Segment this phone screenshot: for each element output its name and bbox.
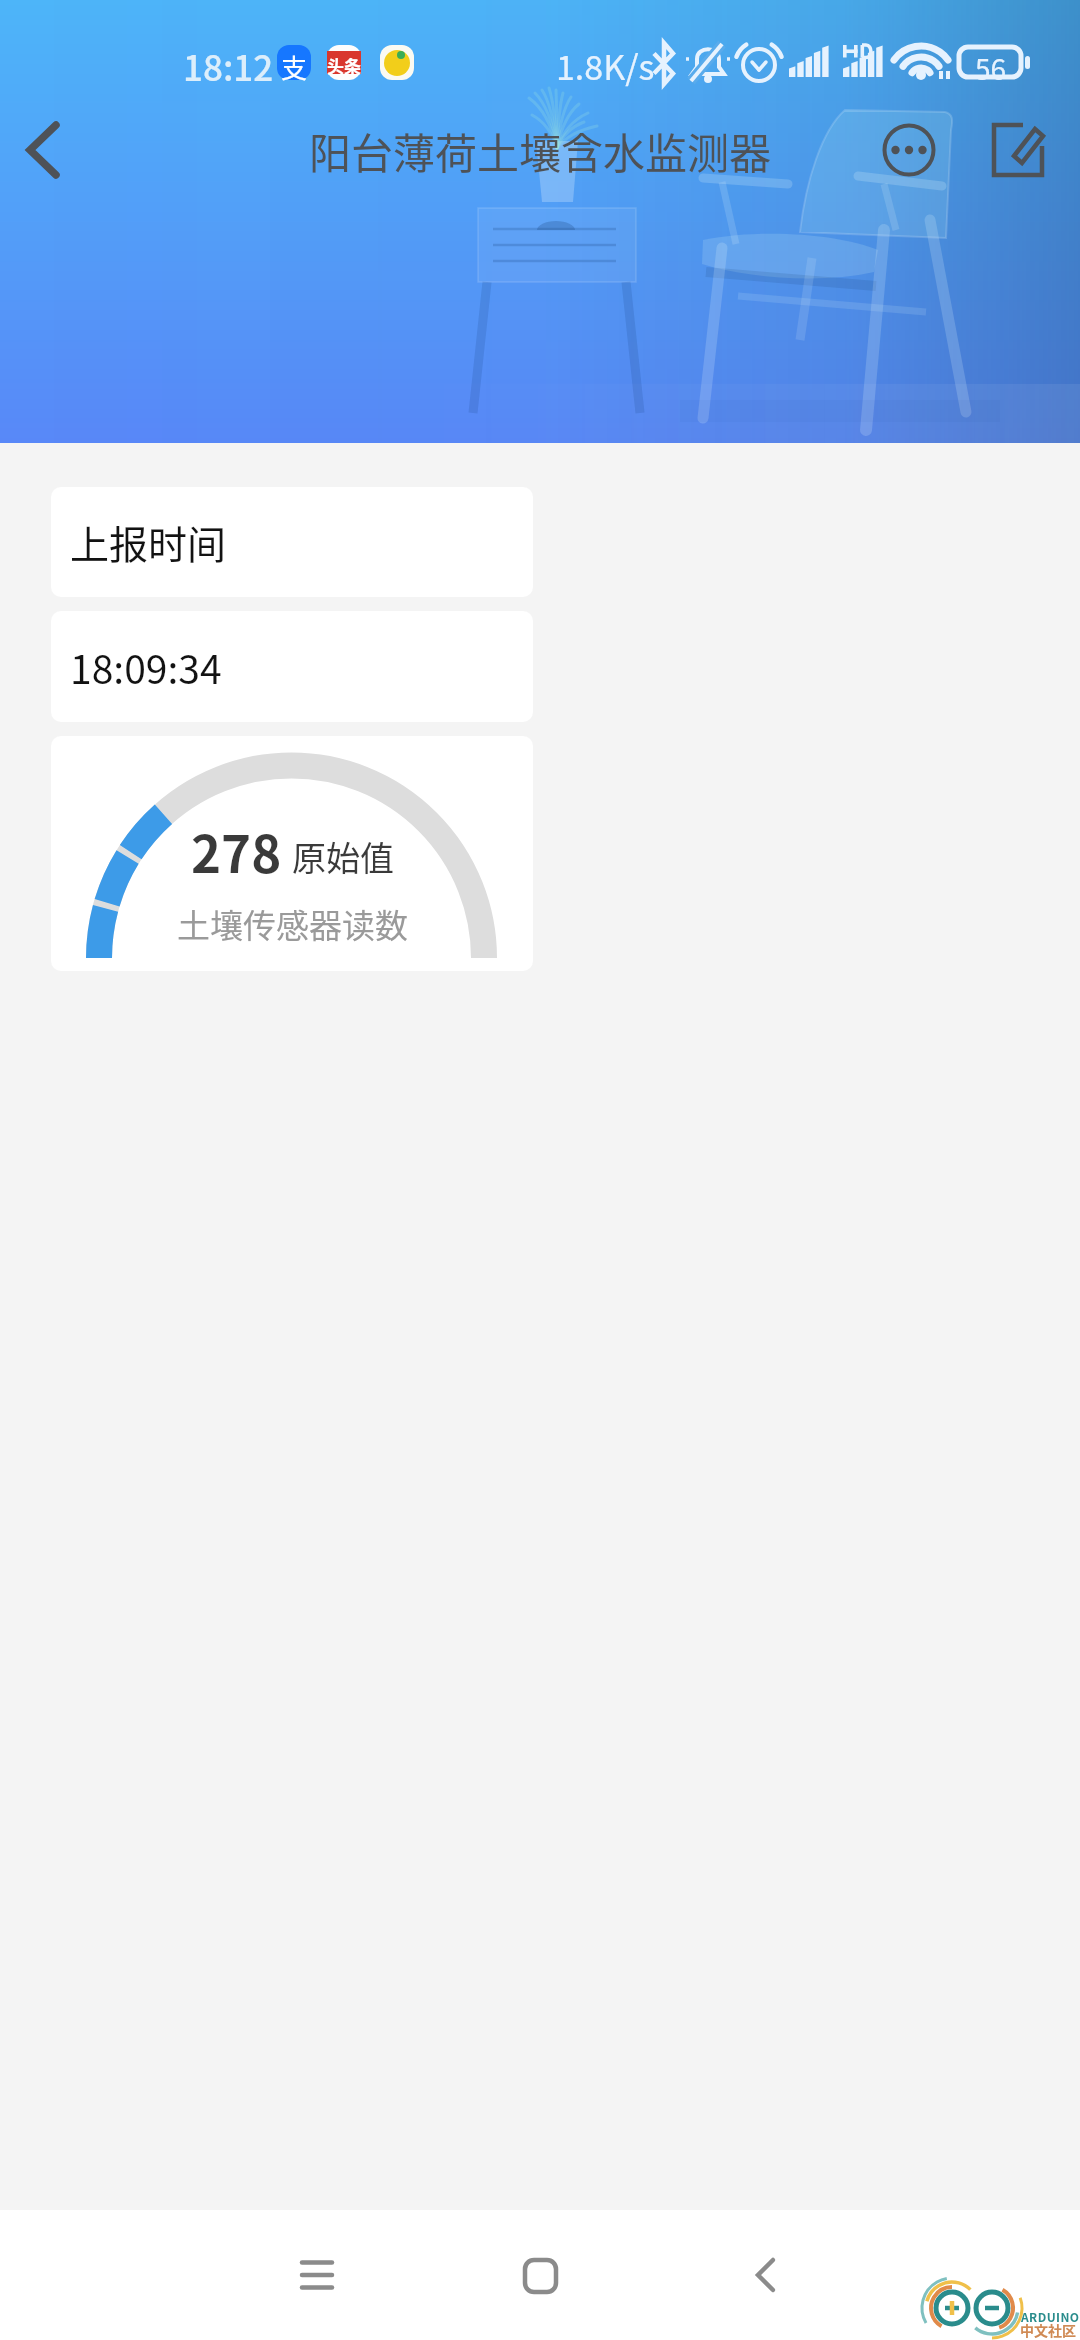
staticText: 中文社区 xyxy=(1020,2320,1076,2340)
button[interactable]: More options xyxy=(856,97,961,202)
button[interactable]: Back xyxy=(706,2215,826,2335)
staticText: 278 xyxy=(191,814,282,888)
staticText: 18:09:34 xyxy=(70,639,222,695)
button[interactable]: 上报时间 xyxy=(51,487,533,597)
staticText: 1.8K/s xyxy=(556,41,655,90)
button[interactable]: Back xyxy=(0,97,96,202)
staticText: 原始值 xyxy=(292,832,394,881)
button[interactable]: Recent apps xyxy=(257,2215,377,2335)
staticText: 上报时间 xyxy=(70,514,227,570)
button[interactable]: Edit xyxy=(965,97,1070,202)
staticText: 支 xyxy=(281,48,308,86)
button[interactable]: 18:09:34 xyxy=(51,611,533,722)
staticText: 头条 xyxy=(327,53,361,78)
staticText: 56 xyxy=(975,48,1007,89)
staticText: ARDUINO xyxy=(1021,2308,1080,2325)
button[interactable]: Home xyxy=(480,2215,600,2335)
staticText: 阳台薄荷土壤含水监测器 xyxy=(309,120,772,181)
staticText: 18:12 xyxy=(183,40,274,91)
staticText: 土壤传感器读数 xyxy=(177,900,408,948)
button[interactable]: 278 xyxy=(51,736,533,971)
